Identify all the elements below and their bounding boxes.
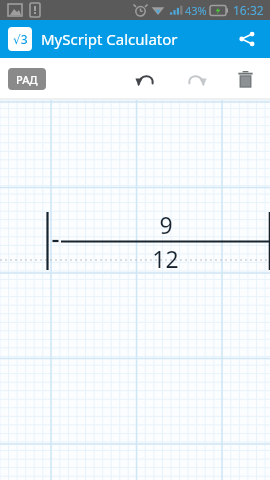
staticText: 43% (185, 3, 207, 18)
staticText: 9 (159, 209, 173, 240)
button[interactable]: Share (232, 24, 262, 54)
staticText: MyScript Calculator (41, 29, 178, 49)
button[interactable]: App icon (8, 27, 32, 51)
staticText: 16:32 (233, 2, 264, 18)
staticText: РАД (16, 72, 38, 87)
staticText: 12 (152, 243, 179, 274)
staticText: √3 (13, 31, 28, 47)
button[interactable]: РАД (8, 68, 46, 90)
button[interactable]: Clear (228, 62, 262, 96)
button[interactable]: Undo (128, 62, 162, 96)
button[interactable]: Redo (180, 62, 214, 96)
